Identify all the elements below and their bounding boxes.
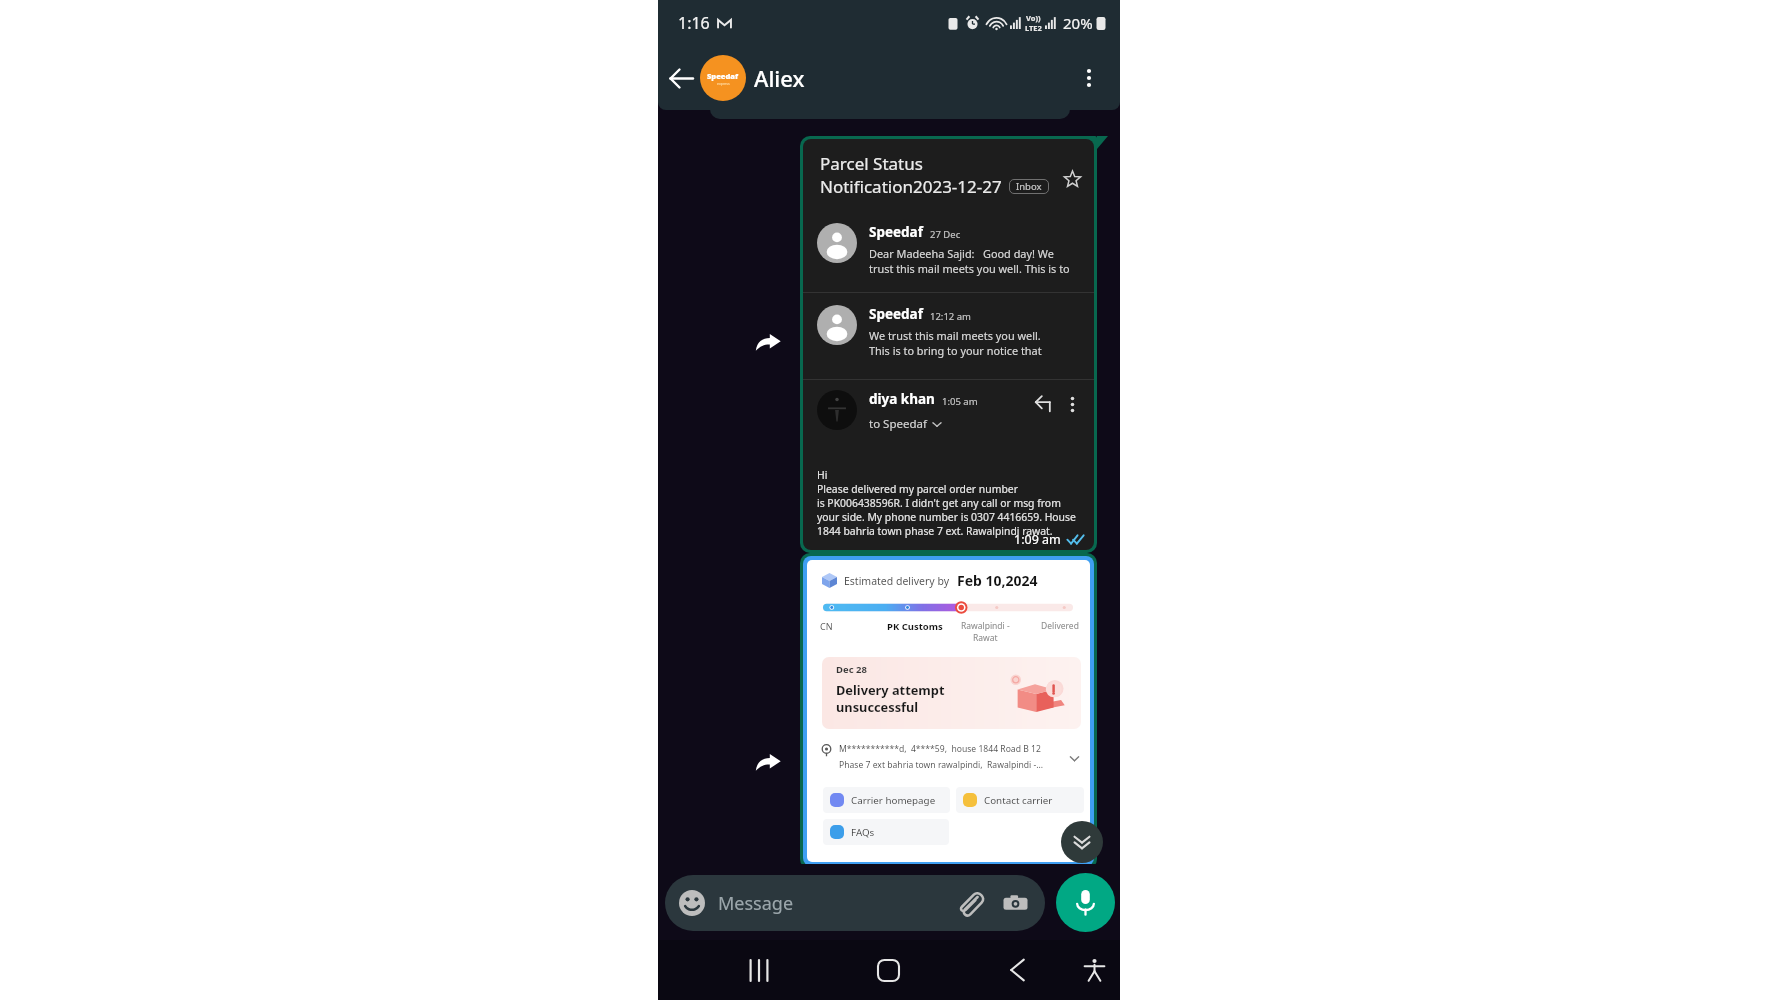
button[interactable]: Attach xyxy=(954,888,984,918)
button[interactable]: Message options xyxy=(1058,390,1086,418)
button[interactable]: Parcel tracking card xyxy=(803,556,1094,866)
button[interactable]: Carrier homepage xyxy=(823,787,950,813)
staticText: Dec 28 xyxy=(836,663,867,676)
staticText: trust this mail meets you well. This is … xyxy=(869,261,1070,276)
button[interactable]: Emoji xyxy=(665,875,1045,931)
staticText: Delivery attempt xyxy=(836,681,945,698)
button[interactable]: FAQs xyxy=(823,819,949,845)
staticText: We trust this mail meets you well. xyxy=(869,328,1041,343)
staticText: Rawalpindi - xyxy=(961,620,1010,632)
staticText: Hi xyxy=(817,468,828,482)
staticText: Dear Madeeha Sajid: Good day! We xyxy=(869,246,1054,261)
button[interactable]: Recent apps xyxy=(733,944,785,996)
button[interactable]: Reply xyxy=(1030,390,1058,418)
staticText: Inbox xyxy=(1016,180,1042,193)
staticText: M***********d, 4****59, house 1844 Road … xyxy=(839,743,1041,755)
staticText: your side. My phone number is 0307 44166… xyxy=(817,510,1076,524)
button[interactable]: Scroll to bottom xyxy=(1061,821,1103,863)
staticText: Vo)) xyxy=(1026,13,1041,23)
staticText: 1:05 am xyxy=(942,395,978,408)
button[interactable]: Contact photo xyxy=(700,55,746,101)
staticText: Aliex xyxy=(754,63,805,93)
button[interactable]: Back xyxy=(662,59,700,97)
staticText: Speedaf xyxy=(869,305,923,323)
staticText: 1:09 am xyxy=(1014,531,1061,548)
button[interactable]: Camera xyxy=(1001,889,1029,917)
staticText: 1:16 xyxy=(678,12,710,34)
staticText: LTE2 xyxy=(1025,23,1042,33)
button[interactable]: Back xyxy=(991,944,1043,996)
staticText: express xyxy=(717,81,730,86)
staticText: Rawat xyxy=(973,632,998,644)
staticText: Speedaf xyxy=(869,223,923,241)
staticText: Carrier homepage xyxy=(851,794,936,807)
staticText: Feb 10,2024 xyxy=(957,571,1038,590)
button[interactable]: Forward xyxy=(751,326,783,358)
button[interactable]: Contact carrier xyxy=(956,787,1084,813)
staticText: is PK006438596R. I didn't get any call o… xyxy=(817,496,1061,510)
staticText: This is to bring to your notice that xyxy=(869,343,1042,358)
staticText: Notification2023-12-27 xyxy=(820,175,1002,198)
staticText: Contact carrier xyxy=(984,794,1053,807)
staticText: 27 Dec xyxy=(930,228,961,241)
button[interactable]: Email conversation message xyxy=(803,139,1094,550)
staticText: Please delivered my parcel order number xyxy=(817,482,1018,496)
button[interactable]: Emoji xyxy=(679,890,705,916)
button[interactable]: Accessibility xyxy=(1070,946,1118,994)
staticText: 1844 bahria town phase 7 ext. Rawalpindi… xyxy=(817,524,1053,538)
button[interactable]: Home xyxy=(862,944,914,996)
button[interactable]: Forward xyxy=(751,746,783,778)
staticText: 12:12 am xyxy=(930,310,971,323)
staticText: FAQs xyxy=(851,826,875,839)
staticText: PK Customs xyxy=(887,620,943,633)
staticText: Delivered xyxy=(1041,620,1079,632)
button[interactable]: More options xyxy=(1070,59,1108,97)
staticText: 20% xyxy=(1063,13,1093,33)
staticText: to Speedaf xyxy=(869,416,927,432)
staticText: CN xyxy=(820,620,833,632)
staticText: diya khan xyxy=(869,390,935,408)
staticText: Speedaf xyxy=(707,71,739,81)
staticText: Estimated delivery by xyxy=(844,574,950,588)
staticText: Phase 7 ext bahria town rawalpindi, Rawa… xyxy=(839,759,1044,771)
staticText: unsuccessful xyxy=(836,698,919,715)
button[interactable]: Star xyxy=(1058,165,1086,193)
staticText: Message xyxy=(718,891,794,916)
staticText: Parcel Status xyxy=(820,152,923,175)
button[interactable]: Voice message xyxy=(1056,873,1115,932)
